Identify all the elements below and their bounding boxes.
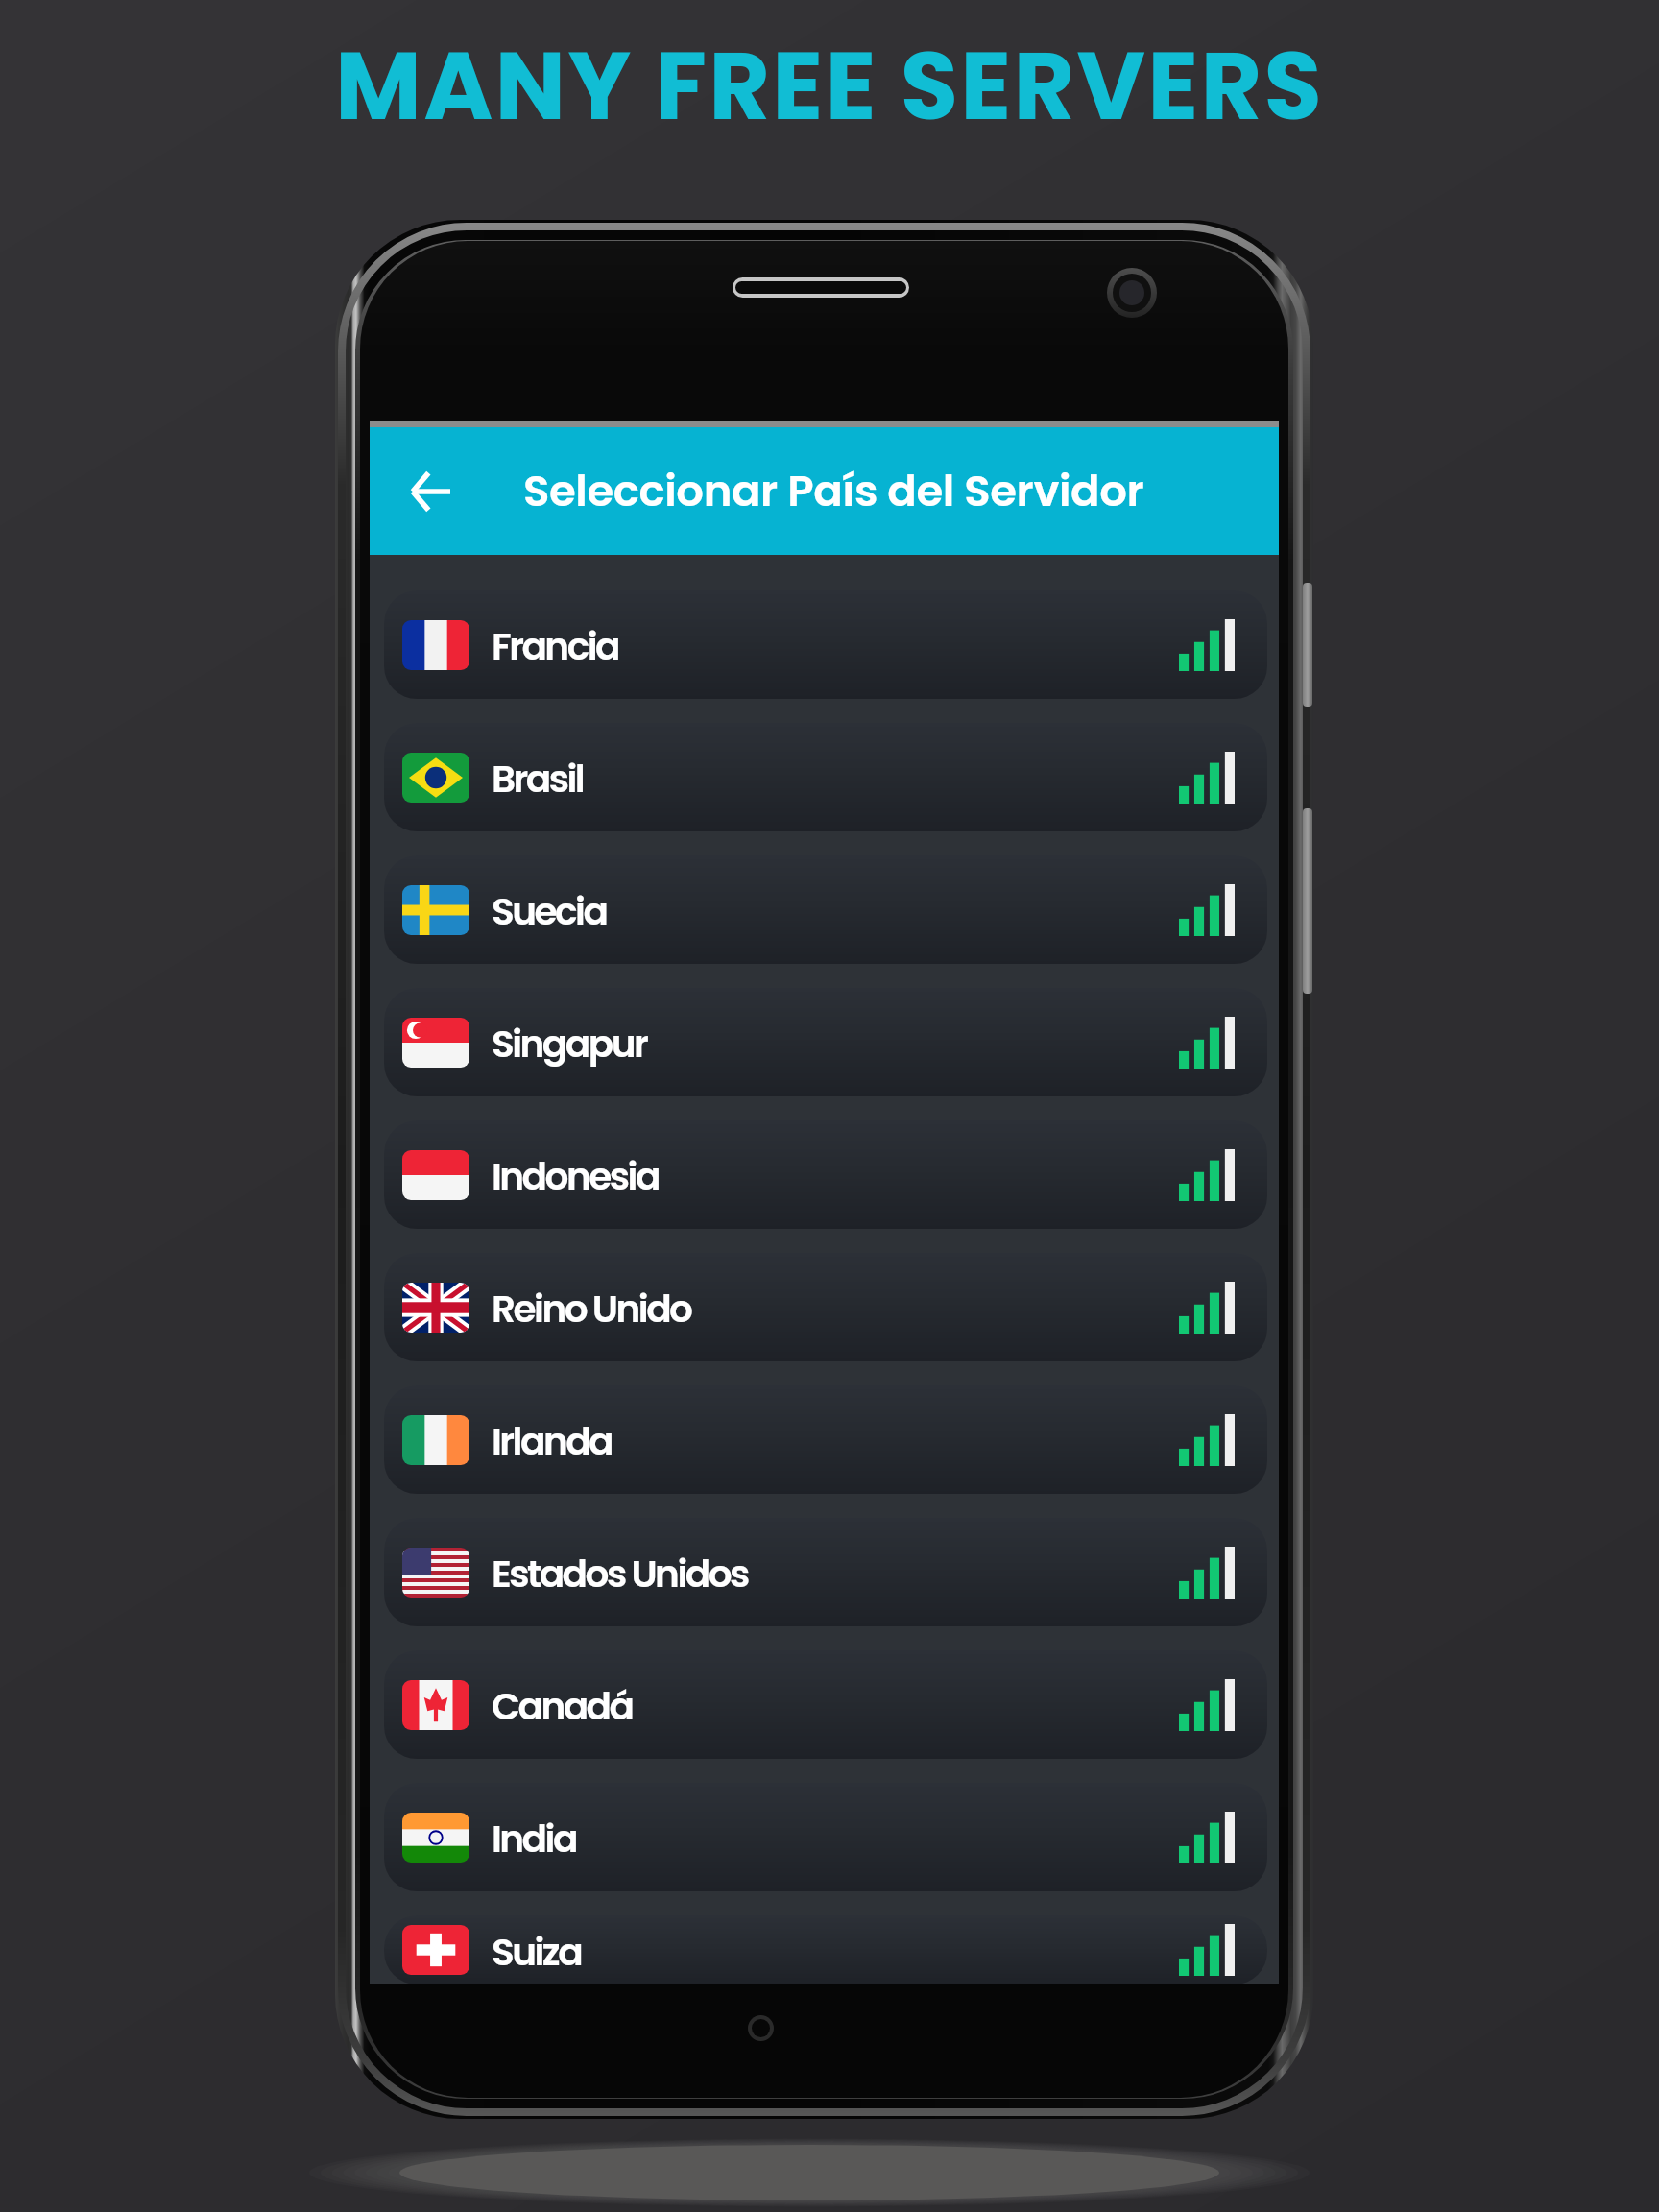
button[interactable]: Suiza — [384, 1915, 1267, 1984]
other: Signal strength — [1179, 752, 1235, 804]
other: Signal strength — [1179, 1017, 1235, 1069]
staticText: India — [492, 1813, 576, 1865]
staticText: Estados Unidos — [492, 1548, 748, 1600]
button[interactable]: Back — [394, 455, 467, 528]
staticText: Irlanda — [492, 1415, 613, 1468]
other: Signal strength — [1179, 1282, 1235, 1334]
other: Signal strength — [1179, 1149, 1235, 1201]
button[interactable]: Singapur — [384, 988, 1267, 1096]
button[interactable]: Francia — [384, 590, 1267, 699]
staticText: Reino Unido — [492, 1283, 691, 1335]
other: Signal strength — [1179, 1547, 1235, 1599]
button[interactable]: Reino Unido — [384, 1253, 1267, 1361]
staticText: Francia — [492, 620, 618, 673]
button[interactable]: Irlanda — [384, 1385, 1267, 1494]
staticText: Brasil — [492, 753, 584, 805]
other: Signal strength — [1179, 1812, 1235, 1863]
staticText: Indonesia — [492, 1150, 659, 1203]
staticText: Suiza — [492, 1926, 582, 1979]
button[interactable]: India — [384, 1783, 1267, 1891]
staticText: MANY FREE SERVERS — [0, 20, 1659, 152]
other: Signal strength — [1179, 1924, 1235, 1976]
staticText: Singapur — [492, 1018, 647, 1070]
other: Signal strength — [1179, 619, 1235, 671]
button[interactable]: Indonesia — [384, 1120, 1267, 1229]
staticText: Seleccionar País del Servidor — [523, 461, 1144, 521]
staticText: Canadá — [492, 1680, 633, 1733]
other: Signal strength — [1179, 1414, 1235, 1466]
button[interactable]: Canadá — [384, 1650, 1267, 1759]
button[interactable]: Suecia — [384, 855, 1267, 964]
button[interactable]: Brasil — [384, 723, 1267, 831]
other: Signal strength — [1179, 1679, 1235, 1731]
button[interactable]: Estados Unidos — [384, 1518, 1267, 1626]
staticText: Suecia — [492, 885, 607, 938]
other: Signal strength — [1179, 884, 1235, 936]
